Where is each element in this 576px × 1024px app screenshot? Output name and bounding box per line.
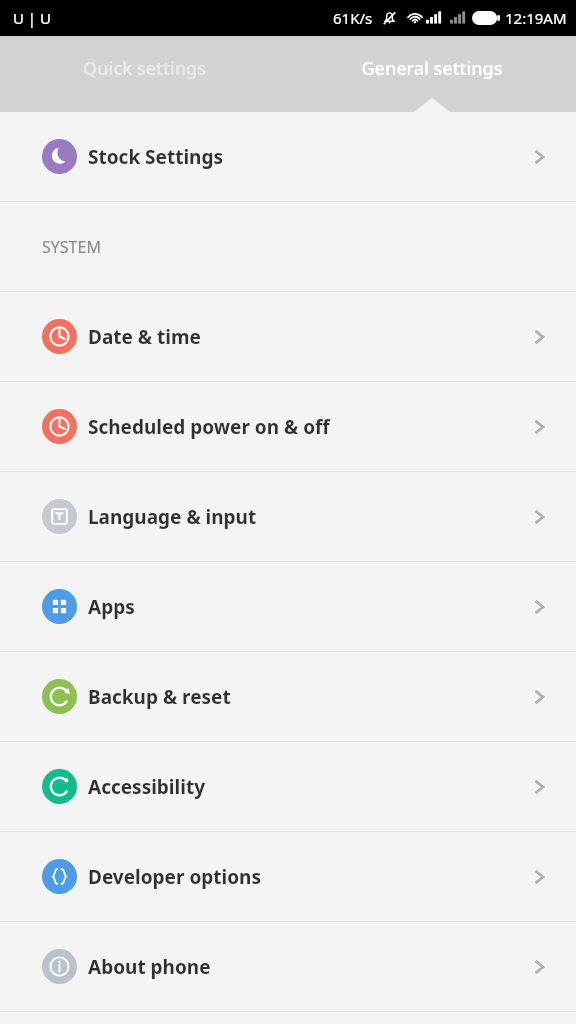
staticText: 12:19AM xyxy=(505,8,567,28)
staticText: Date & time xyxy=(88,324,201,350)
staticText: U | U xyxy=(13,8,51,28)
staticText: SYSTEM xyxy=(42,236,101,258)
button[interactable]: About phone xyxy=(0,922,576,1011)
staticText: Quick settings xyxy=(83,56,206,81)
button[interactable]: Language & input xyxy=(0,472,576,561)
staticText: Developer options xyxy=(88,864,261,890)
button[interactable]: Backup & reset xyxy=(0,652,576,741)
button[interactable]: Scheduled power on & off xyxy=(0,382,576,471)
staticText: Accessibility xyxy=(88,774,205,800)
staticText: Language & input xyxy=(88,504,257,530)
button[interactable]: Accessibility xyxy=(0,742,576,831)
button[interactable]: Apps xyxy=(0,562,576,651)
staticText: Scheduled power on & off xyxy=(88,414,330,440)
staticText: 61K/s xyxy=(333,8,373,28)
button[interactable]: Developer options xyxy=(0,832,576,921)
staticText: Backup & reset xyxy=(88,684,231,710)
button[interactable]: Quick settings xyxy=(0,36,288,112)
staticText: Stock Settings xyxy=(88,144,223,170)
button[interactable]: General settings xyxy=(288,36,576,112)
button[interactable]: Date & time xyxy=(0,292,576,381)
staticText: Apps xyxy=(88,594,135,620)
staticText: General settings xyxy=(361,56,503,81)
button[interactable]: Stock Settings xyxy=(0,112,576,201)
staticText: About phone xyxy=(88,954,211,980)
